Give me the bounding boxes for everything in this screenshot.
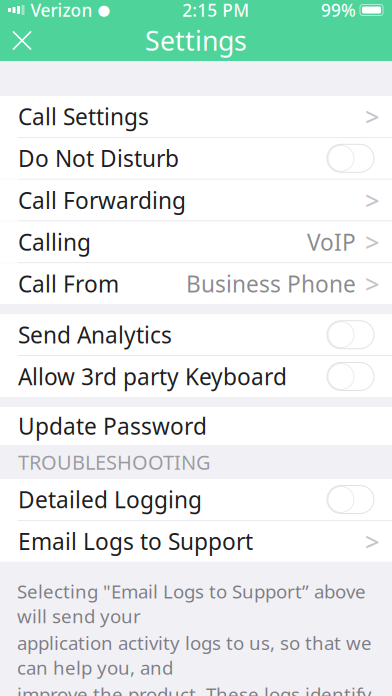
- staticText: >: [365, 183, 379, 217]
- staticText: Verizon: [30, 0, 92, 21]
- staticText: 2:15 PM: [182, 0, 249, 21]
- staticText: Call Forwarding: [18, 185, 186, 215]
- staticText: Call Settings: [18, 101, 149, 131]
- staticText: >: [365, 524, 379, 558]
- button[interactable]: Allow 3rd party Keyboard: [0, 356, 392, 397]
- staticText: Send Analytics: [18, 320, 172, 350]
- button[interactable]: Update Password: [0, 407, 392, 445]
- staticText: Update Password: [18, 411, 207, 441]
- staticText: improve the product. These logs identify…: [17, 682, 372, 696]
- staticText: Calling: [18, 227, 91, 257]
- staticText: Selecting "Email Logs to Support” above …: [17, 579, 366, 628]
- staticText: application activity logs to us, so that…: [17, 630, 372, 680]
- staticText: 99%: [321, 0, 356, 21]
- button[interactable]: Call Forwarding: [0, 180, 392, 221]
- staticText: >: [365, 100, 379, 133]
- button[interactable]: Email Logs to Support: [0, 521, 392, 562]
- staticText: Business Phone: [186, 269, 356, 299]
- staticText: TROUBLESHOOTING: [18, 449, 211, 475]
- button[interactable]: Call From: [0, 263, 392, 304]
- staticText: Call From: [18, 269, 119, 299]
- staticText: >: [365, 225, 379, 259]
- button[interactable]: Close: [0, 20, 44, 61]
- staticText: Detailed Logging: [18, 484, 202, 514]
- staticText: Allow 3rd party Keyboard: [18, 361, 287, 391]
- staticText: >: [365, 267, 379, 300]
- staticText: ●: [97, 2, 110, 18]
- button[interactable]: Do Not Disturb: [0, 138, 392, 179]
- button[interactable]: Call Settings: [0, 96, 392, 137]
- staticText: Email Logs to Support: [18, 526, 253, 556]
- staticText: VoIP: [307, 227, 356, 257]
- staticText: Do Not Disturb: [18, 143, 179, 173]
- button[interactable]: Send Analytics: [0, 314, 392, 355]
- staticText: Settings: [145, 23, 247, 58]
- button[interactable]: Detailed Logging: [0, 479, 392, 520]
- button[interactable]: Calling: [0, 221, 392, 262]
